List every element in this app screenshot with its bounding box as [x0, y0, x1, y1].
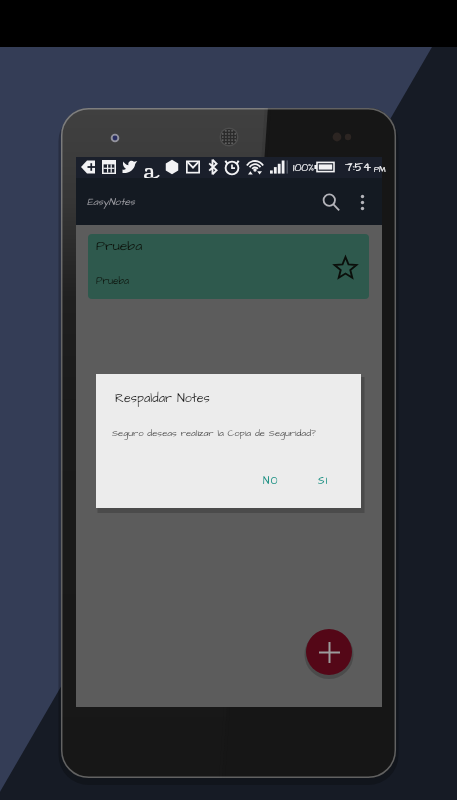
staticText: 100% [293, 160, 314, 175]
button[interactable]: NO [258, 471, 284, 491]
staticText: Prueba [96, 274, 130, 288]
staticText: SI [318, 474, 329, 488]
staticText: Seguro deseas realizar la Copia de Segur… [112, 427, 316, 440]
button[interactable]: Add note [306, 629, 352, 675]
button[interactable]: SI [313, 471, 334, 491]
staticText: Prueba [96, 236, 143, 255]
button[interactable]: More options [344, 184, 380, 220]
button[interactable]: Prueba [88, 234, 369, 299]
staticText: a [143, 156, 156, 177]
staticText: EasyNotes [87, 195, 135, 209]
button[interactable]: Favourite [328, 251, 362, 285]
staticText: NO [263, 474, 279, 488]
staticText: PM [374, 164, 386, 175]
staticText: 7:54 [345, 159, 372, 176]
staticText: Respaldar Notes [115, 390, 210, 407]
button[interactable]: Search [318, 189, 344, 215]
